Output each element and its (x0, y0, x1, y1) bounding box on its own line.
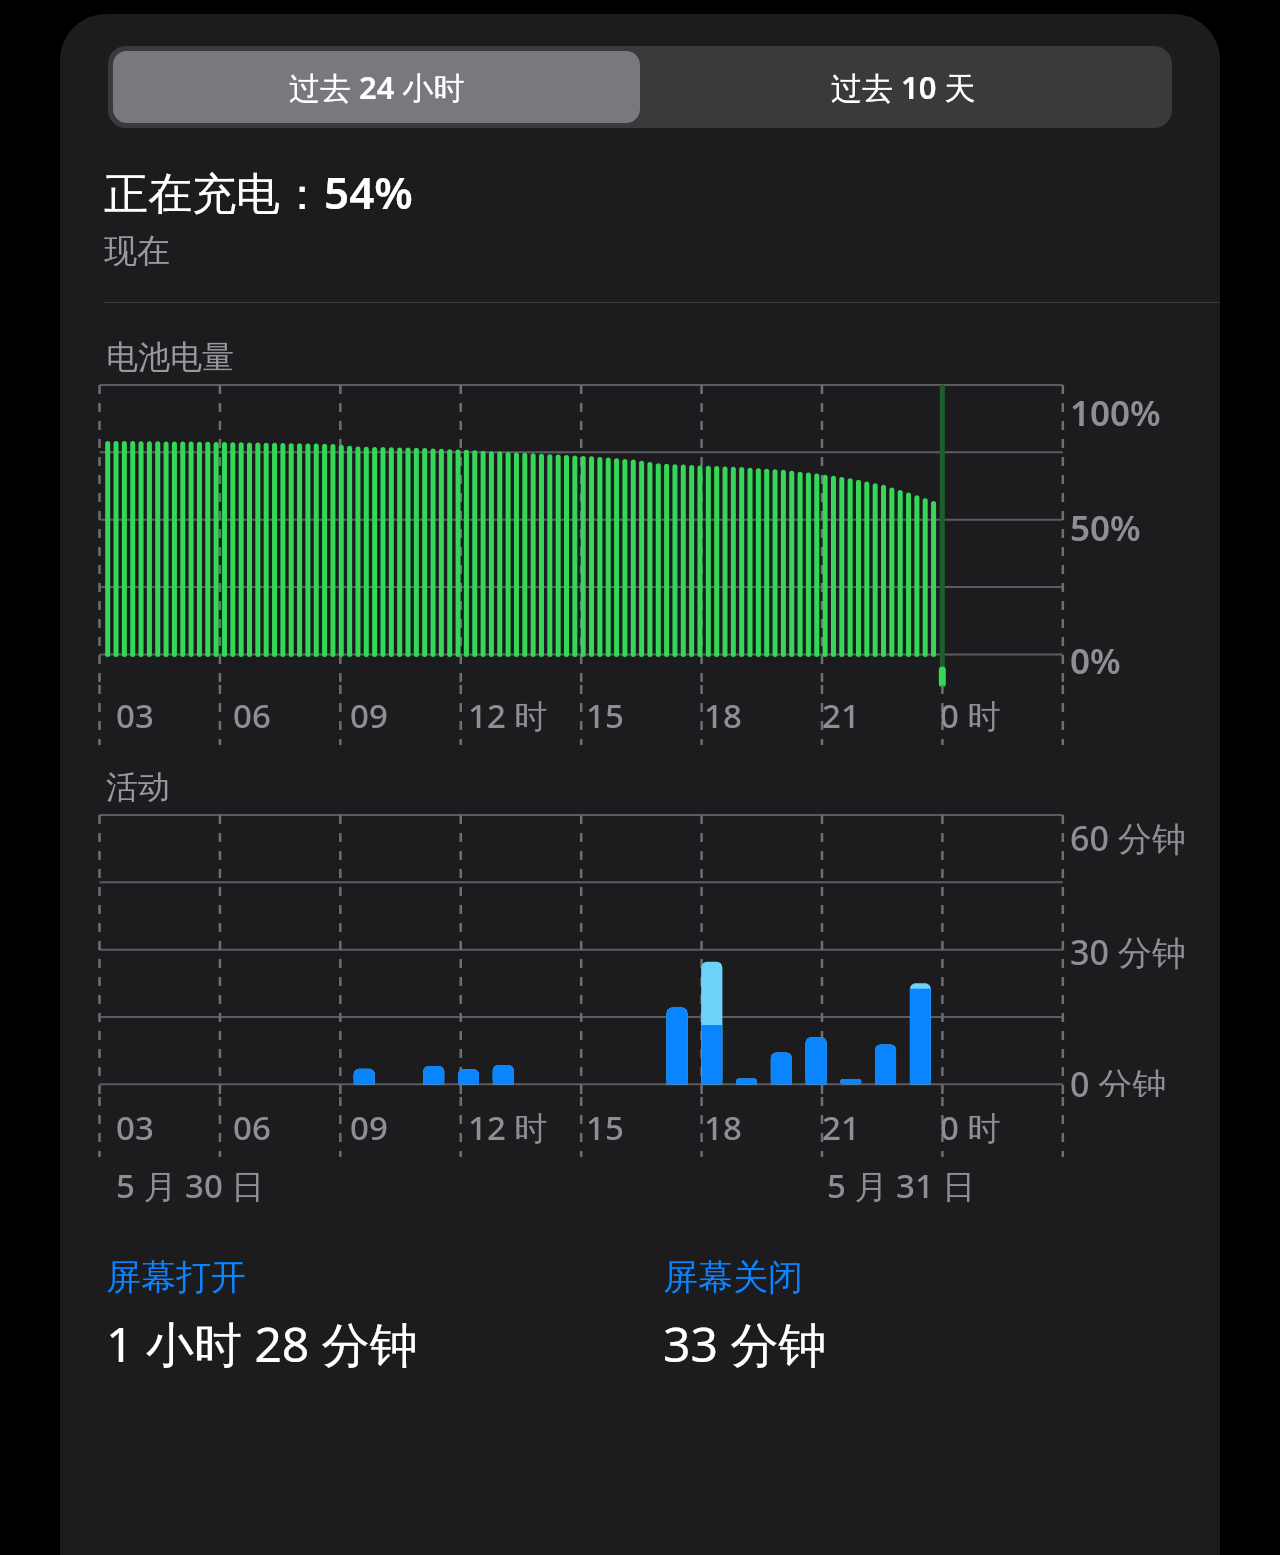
staticText: 09 (350, 693, 388, 738)
staticText: 60 分钟 (1070, 815, 1186, 861)
staticText: 15 (586, 1105, 624, 1150)
staticText: 过去 24 小时 (289, 66, 465, 108)
button[interactable]: 过去 24 小时 (113, 51, 640, 123)
staticText: 100% (1070, 389, 1161, 437)
staticText: 0% (1070, 637, 1121, 685)
staticText: 12 时 (468, 693, 548, 738)
staticText: 0 时 (940, 1105, 1001, 1150)
staticText: 0 时 (940, 693, 1001, 738)
button[interactable]: 屏幕打开 (106, 1255, 663, 1377)
staticText: 0 分钟 (1070, 1061, 1167, 1097)
staticText: 正在充电：54% (104, 162, 413, 222)
staticText: 屏幕关闭 (663, 1255, 803, 1299)
staticText: 屏幕打开 (106, 1255, 246, 1299)
button[interactable]: 过去 10 天 (640, 51, 1167, 123)
staticText: 12 时 (468, 1105, 548, 1150)
staticText: 5 月 31 日 (827, 1163, 976, 1208)
staticText: 06 (233, 1105, 271, 1150)
staticText: 活动 (106, 767, 170, 807)
staticText: 06 (233, 693, 271, 738)
staticText: 现在 (104, 230, 170, 272)
staticText: 09 (350, 1105, 388, 1150)
staticText: 21 (822, 1105, 860, 1150)
staticText: 33 分钟 (663, 1311, 827, 1377)
staticText: 03 (116, 693, 154, 738)
staticText: 过去 10 天 (831, 66, 976, 108)
staticText: 30 分钟 (1070, 929, 1186, 975)
staticText: 50% (1070, 504, 1141, 552)
staticText: 03 (116, 1105, 154, 1150)
staticText: 电池电量 (106, 337, 234, 377)
button[interactable]: 屏幕关闭 (663, 1255, 1220, 1377)
staticText: 15 (586, 693, 624, 738)
staticText: 18 (704, 693, 742, 738)
staticText: 1 小时 28 分钟 (106, 1311, 418, 1377)
staticText: 18 (704, 1105, 742, 1150)
staticText: 21 (822, 693, 860, 738)
staticText: 5 月 30 日 (116, 1163, 265, 1208)
